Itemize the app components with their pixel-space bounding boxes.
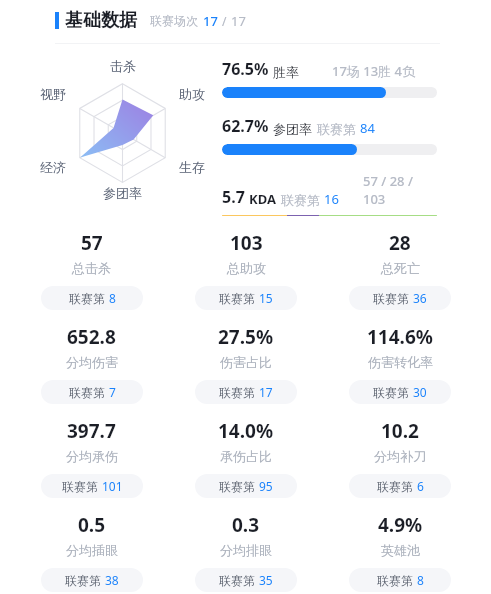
staticText: 103	[230, 230, 263, 256]
button[interactable]: 114.6%	[323, 310, 477, 404]
staticText: 联赛第	[281, 192, 320, 208]
staticText: 总击杀	[72, 260, 111, 276]
button[interactable]: 76.5%	[222, 58, 437, 98]
staticText: 分均补刀	[374, 448, 426, 464]
button[interactable]: 62.7%	[222, 115, 437, 155]
staticText: 5.7	[222, 186, 245, 208]
staticText: 联赛第	[377, 479, 413, 494]
staticText: 承伤占比	[220, 448, 272, 464]
button[interactable]: 0.3	[169, 498, 323, 592]
staticText: 101	[102, 478, 123, 494]
staticText: 联赛第	[69, 291, 105, 306]
staticText: 参团率	[273, 121, 312, 137]
staticText: 8	[109, 290, 116, 306]
staticText: 联赛第	[219, 385, 255, 400]
staticText: 经济	[40, 159, 66, 175]
staticText: 分均承伤	[66, 448, 118, 464]
staticText: 62.7%	[222, 115, 269, 137]
staticText: 76.5%	[222, 58, 269, 80]
staticText: /	[222, 13, 227, 29]
staticText: 95	[259, 478, 273, 494]
button[interactable]: 28	[323, 216, 477, 310]
staticText: 分均插眼	[66, 542, 118, 558]
staticText: 84	[360, 119, 375, 137]
staticText: 联赛第	[377, 573, 413, 588]
staticText: 联赛场次	[150, 13, 198, 28]
staticText: 胜率	[273, 64, 299, 80]
button[interactable]: 4.9%	[323, 498, 477, 592]
staticText: 397.7	[67, 418, 116, 444]
staticText: 生存	[179, 159, 205, 175]
staticText: 114.6%	[367, 324, 433, 350]
staticText: 6	[417, 478, 424, 494]
staticText: 17场 13胜 4负	[332, 62, 415, 80]
button[interactable]: 基础数据	[55, 9, 491, 32]
staticText: 38	[105, 572, 119, 588]
staticText: 8	[417, 572, 424, 588]
staticText: 7	[109, 384, 116, 400]
staticText: 击杀	[110, 58, 136, 74]
staticText: 30	[413, 384, 427, 400]
staticText: 总死亡	[381, 260, 420, 276]
button[interactable]: 10.2	[323, 404, 477, 498]
staticText: 16	[324, 190, 339, 208]
staticText: 35	[259, 572, 273, 588]
staticText: 分均排眼	[220, 542, 272, 558]
staticText: 参团率	[103, 185, 142, 201]
staticText: 28	[389, 230, 411, 256]
staticText: 英雄池	[381, 542, 420, 558]
staticText: 17	[203, 12, 218, 30]
staticText: 17	[231, 12, 246, 30]
staticText: 17	[259, 384, 273, 400]
staticText: 0.5	[78, 512, 106, 538]
button[interactable]: 57	[14, 216, 169, 310]
button[interactable]: 14.0%	[169, 404, 323, 498]
button[interactable]: 397.7	[14, 404, 169, 498]
staticText: 基础数据	[65, 9, 137, 32]
staticText: 10.2	[381, 418, 419, 444]
staticText: 联赛第	[373, 291, 409, 306]
staticText: 14.0%	[218, 418, 274, 444]
button[interactable]: 0.5	[14, 498, 169, 592]
staticText: KDA	[249, 190, 276, 208]
staticText: 助攻	[179, 86, 205, 102]
staticText: 4.9%	[378, 512, 423, 538]
staticText: 联赛第	[62, 479, 98, 494]
button[interactable]: 652.8	[14, 310, 169, 404]
staticText: 27.5%	[218, 324, 274, 350]
staticText: 57 / 28 / 103	[363, 172, 437, 208]
staticText: 视野	[40, 86, 66, 102]
staticText: 联赛第	[373, 385, 409, 400]
staticText: 联赛第	[219, 291, 255, 306]
button[interactable]: 103	[169, 216, 323, 310]
staticText: 联赛第	[219, 479, 255, 494]
staticText: 0.3	[232, 512, 260, 538]
staticText: 36	[413, 290, 427, 306]
staticText: 联赛第	[219, 573, 255, 588]
staticText: 总助攻	[227, 260, 266, 276]
staticText: 15	[259, 290, 273, 306]
staticText: 652.8	[67, 324, 116, 350]
staticText: 伤害占比	[220, 354, 272, 370]
button[interactable]: 5.7	[222, 172, 437, 216]
staticText: 分均伤害	[66, 354, 118, 370]
staticText: 联赛第	[65, 573, 101, 588]
button[interactable]: 27.5%	[169, 310, 323, 404]
staticText: 伤害转化率	[368, 354, 433, 370]
staticText: 联赛第	[317, 121, 356, 137]
staticText: 57	[81, 230, 103, 256]
staticText: 联赛第	[69, 385, 105, 400]
